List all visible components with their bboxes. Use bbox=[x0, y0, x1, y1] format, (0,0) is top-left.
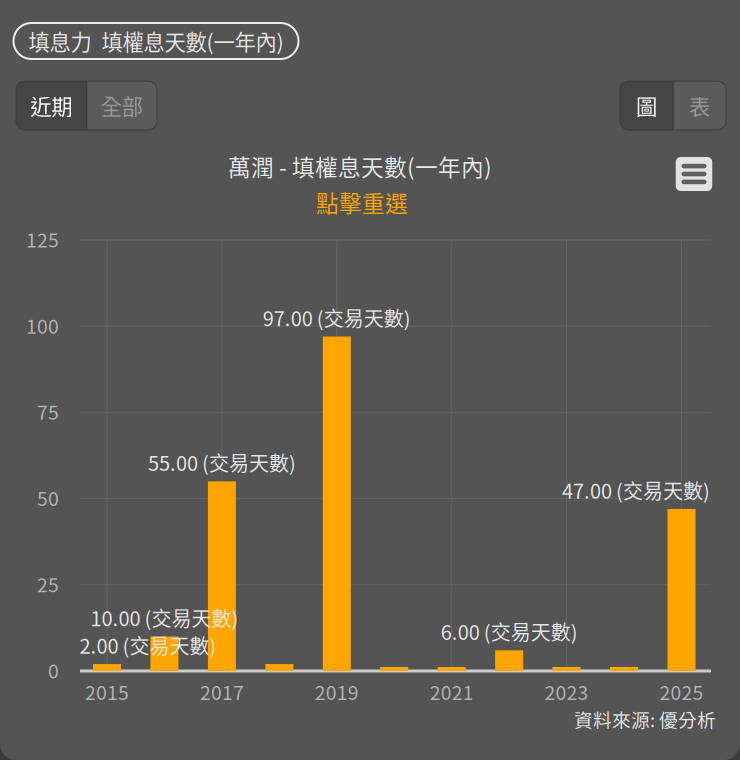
staticText: 2023 bbox=[545, 677, 589, 705]
button[interactable]: 表 bbox=[673, 81, 726, 130]
staticText: 萬潤 - 填權息天數(一年內) bbox=[228, 150, 492, 182]
staticText: 填息力 填權息天數(一年內) bbox=[28, 26, 283, 56]
staticText: 近期 bbox=[30, 90, 72, 121]
staticText: 10.00 (交易天數) bbox=[90, 603, 238, 632]
staticText: 2015 bbox=[85, 677, 129, 705]
staticText: 47.00 (交易天數) bbox=[562, 475, 710, 504]
staticText: 2021 bbox=[430, 677, 474, 705]
staticText: 資料來源: 優分析 bbox=[574, 705, 716, 732]
button[interactable]: Chart menu bbox=[676, 157, 712, 191]
staticText: 全部 bbox=[101, 90, 143, 121]
staticText: 2025 bbox=[659, 677, 703, 705]
button[interactable]: 填息力 填權息天數(一年內) bbox=[13, 23, 298, 59]
button[interactable]: 近期 bbox=[16, 81, 86, 130]
staticText: 2019 bbox=[315, 677, 359, 705]
staticText: 0 bbox=[48, 656, 59, 684]
staticText: 2.00 (交易天數) bbox=[79, 631, 216, 660]
staticText: 125 bbox=[26, 225, 59, 253]
staticText: 50 bbox=[37, 484, 59, 512]
staticText: 6.00 (交易天數) bbox=[441, 617, 578, 646]
staticText: 表 bbox=[689, 90, 710, 121]
button[interactable]: 圖 bbox=[620, 81, 673, 130]
staticText: 點擊重選 bbox=[316, 186, 408, 218]
staticText: 97.00 (交易天數) bbox=[263, 303, 411, 332]
staticText: 100 bbox=[26, 311, 59, 339]
staticText: 2017 bbox=[200, 677, 244, 705]
button[interactable]: 點擊重選 bbox=[316, 186, 408, 218]
staticText: 25 bbox=[37, 570, 59, 598]
staticText: 圖 bbox=[636, 90, 657, 121]
staticText: 55.00 (交易天數) bbox=[148, 448, 296, 477]
button[interactable]: 全部 bbox=[86, 81, 157, 130]
staticText: 75 bbox=[37, 397, 59, 425]
